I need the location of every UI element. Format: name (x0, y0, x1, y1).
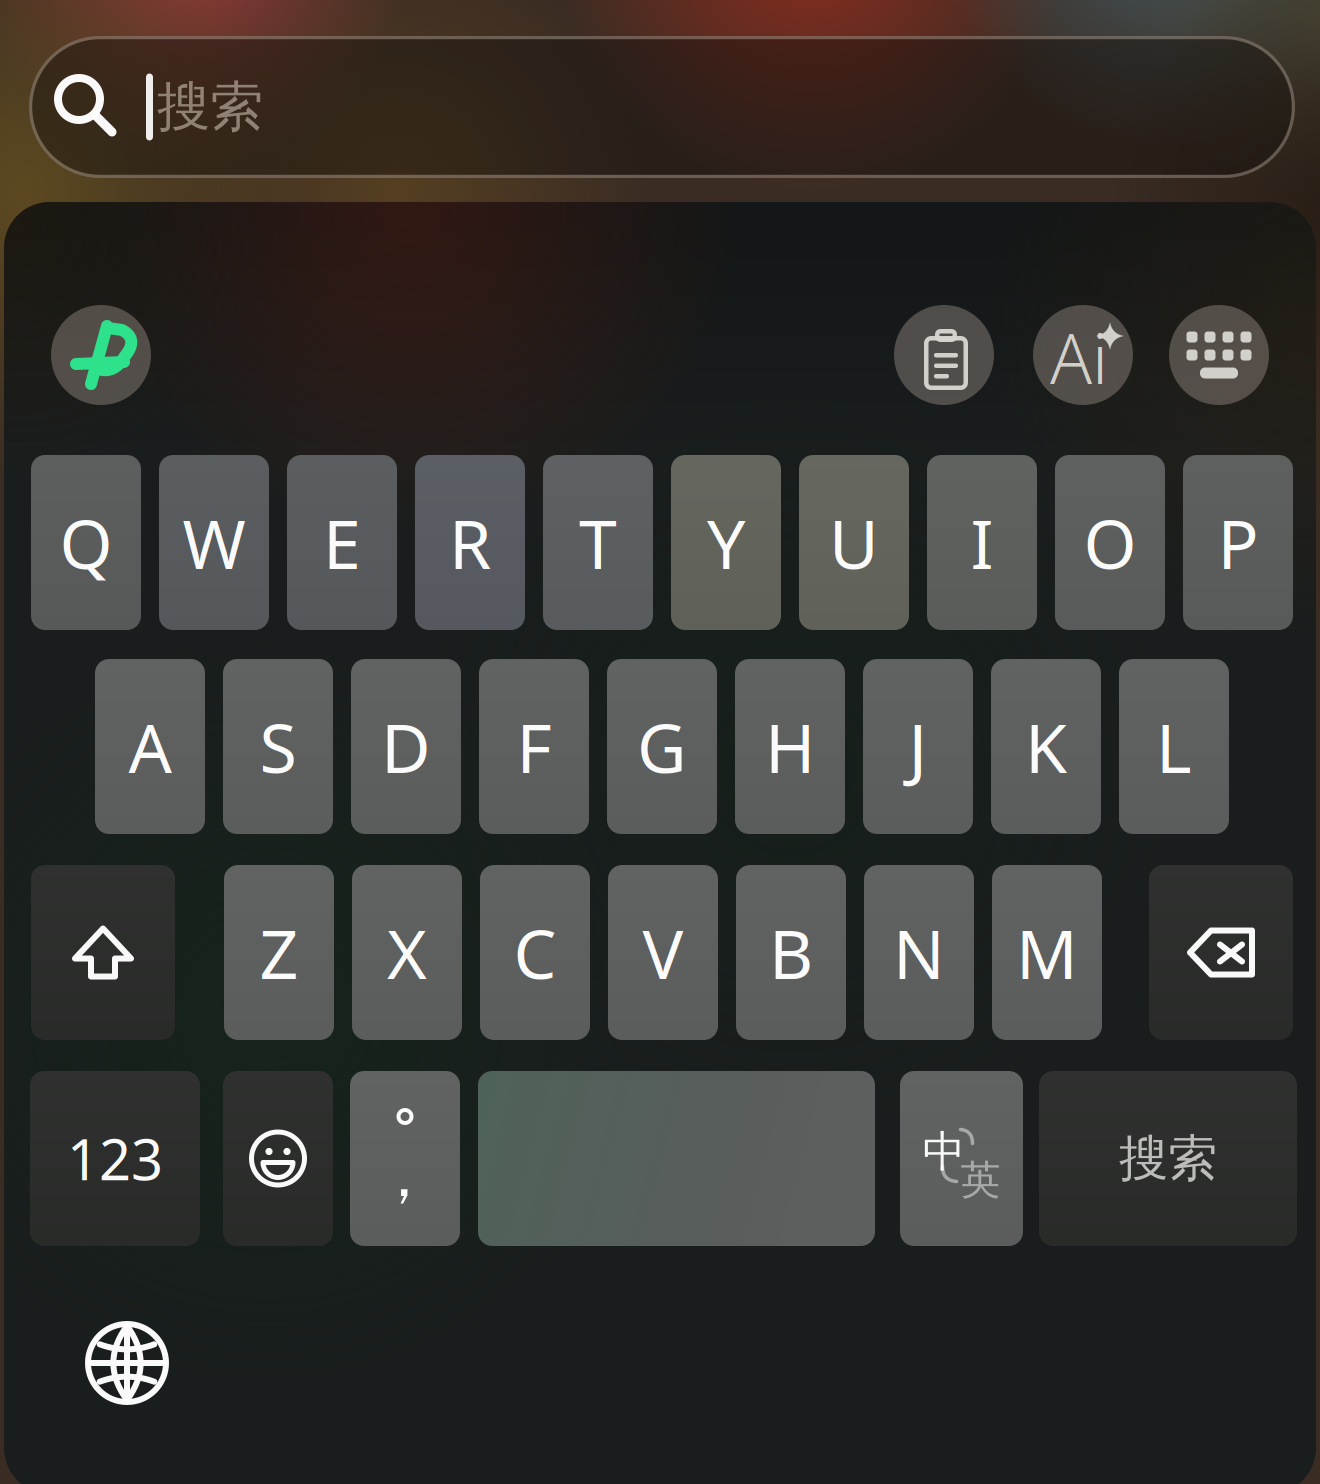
button[interactable]: P (1183, 455, 1293, 630)
staticText: I (970, 497, 993, 588)
button[interactable] (1149, 865, 1293, 1040)
staticText: K (1025, 701, 1067, 792)
button[interactable]: L (1119, 659, 1229, 834)
staticText: P (1217, 497, 1258, 588)
staticText: A (128, 701, 171, 792)
staticText: W (182, 497, 245, 588)
staticText: 英 (960, 1155, 1000, 1205)
button[interactable]: A (95, 659, 205, 834)
staticText: Ai (1050, 311, 1108, 403)
staticText: 搜索 (1119, 1128, 1217, 1189)
button[interactable]: E (287, 455, 397, 630)
button[interactable]: Keyboard app (51, 305, 151, 405)
button[interactable]: S (223, 659, 333, 834)
button[interactable]: G (607, 659, 717, 834)
staticText: H (765, 701, 815, 792)
staticText: X (387, 907, 427, 998)
staticText: E (323, 497, 361, 588)
staticText: B (769, 907, 813, 998)
staticText: S (259, 701, 296, 792)
staticText: 中 (922, 1125, 965, 1178)
staticText: M (1016, 907, 1078, 998)
button[interactable]: M (992, 865, 1102, 1040)
button[interactable]: 123 (30, 1071, 200, 1246)
staticText: R (449, 497, 491, 588)
button[interactable]: O (1055, 455, 1165, 630)
button[interactable]: Q (31, 455, 141, 630)
staticText: ， (374, 1140, 433, 1213)
staticText: 搜索 (157, 74, 263, 140)
staticText: V (642, 907, 683, 998)
button[interactable] (223, 1071, 333, 1246)
button[interactable]: AI assistant (1033, 305, 1133, 405)
button[interactable]: J (863, 659, 973, 834)
staticText: 123 (67, 1121, 163, 1196)
button[interactable]: ， (350, 1071, 460, 1246)
button[interactable]: D (351, 659, 461, 834)
button[interactable]: V (608, 865, 718, 1040)
button[interactable]: T (543, 455, 653, 630)
button[interactable]: Clipboard (894, 305, 994, 405)
button[interactable]: Y (671, 455, 781, 630)
staticText: J (908, 701, 927, 792)
staticText: O (1083, 497, 1136, 588)
button[interactable]: Z (224, 865, 334, 1040)
button[interactable]: U (799, 455, 909, 630)
staticText: N (893, 907, 945, 998)
staticText: D (381, 701, 431, 792)
staticText: Q (59, 497, 112, 588)
staticText: F (516, 701, 551, 792)
button[interactable]: I (927, 455, 1037, 630)
staticText: T (579, 497, 617, 588)
button[interactable]: H (735, 659, 845, 834)
button[interactable]: Space (478, 1071, 875, 1246)
button[interactable]: Hide keyboard (1169, 305, 1269, 405)
button[interactable]: W (159, 455, 269, 630)
button[interactable]: 中 (900, 1071, 1023, 1246)
button[interactable]: 搜索 (29, 36, 1295, 178)
button[interactable]: K (991, 659, 1101, 834)
button[interactable]: F (479, 659, 589, 834)
staticText: Z (259, 907, 298, 998)
button[interactable] (31, 865, 175, 1040)
staticText: L (1156, 701, 1192, 792)
staticText: C (513, 907, 556, 998)
button[interactable]: Switch keyboard (79, 1315, 175, 1411)
button[interactable]: B (736, 865, 846, 1040)
button[interactable]: R (415, 455, 525, 630)
button[interactable]: C (480, 865, 590, 1040)
button[interactable]: N (864, 865, 974, 1040)
button[interactable]: 搜索 (1039, 1071, 1297, 1246)
button[interactable]: X (352, 865, 462, 1040)
staticText: U (829, 497, 879, 588)
staticText: Y (707, 497, 745, 588)
staticText: G (637, 701, 687, 792)
